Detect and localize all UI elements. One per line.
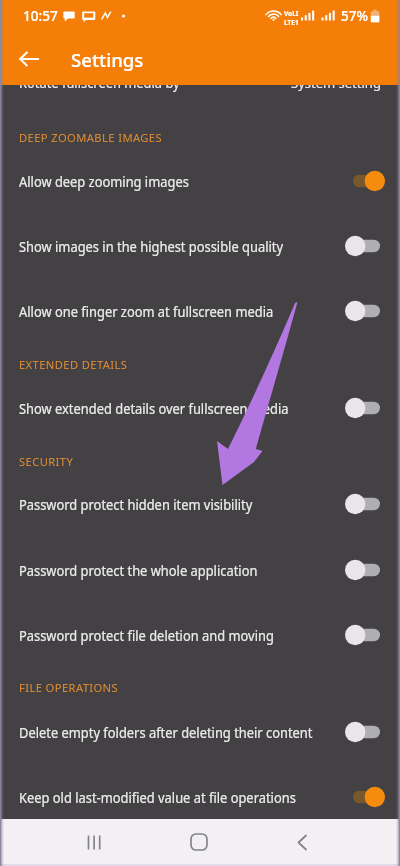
staticText: Rotate fullscreen media by <box>19 73 180 92</box>
staticText: FILE OPERATIONS <box>19 680 119 695</box>
button[interactable]: Password protect the whole application <box>0 538 400 602</box>
staticText: Password protect hidden item visibility <box>19 495 252 514</box>
staticText: Keep old last-modified value at file ope… <box>19 788 296 807</box>
button[interactable]: Delete empty folders after deleting thei… <box>0 700 400 764</box>
staticText: VoLI <box>284 9 299 18</box>
button[interactable]: Password protect file deletion and movin… <box>0 603 400 667</box>
staticText: LTE1 <box>284 18 299 27</box>
staticText: SECURITY <box>19 454 74 469</box>
button[interactable]: Show images in the highest possible qual… <box>0 214 400 278</box>
staticText: Password protect file deletion and movin… <box>19 626 274 645</box>
button[interactable]: Show extended details over fullscreen me… <box>0 376 400 440</box>
staticText: Allow one finger zoom at fullscreen medi… <box>19 302 273 321</box>
button[interactable]: Keep old last-modified value at file ope… <box>0 765 400 829</box>
button[interactable]: Back <box>279 819 327 866</box>
button[interactable]: Allow deep zooming images <box>0 149 400 213</box>
staticText: Show extended details over fullscreen me… <box>19 399 289 418</box>
staticText: System setting <box>291 74 381 92</box>
staticText: Settings <box>71 47 144 72</box>
button[interactable]: Back <box>7 37 51 81</box>
staticText: EXTENDED DETAILS <box>19 357 128 372</box>
staticText: DEEP ZOOMABLE IMAGES <box>19 130 162 145</box>
button[interactable]: Password protect hidden item visibility <box>0 472 400 536</box>
button[interactable]: Recents <box>70 819 118 866</box>
staticText: 10:57 <box>23 6 58 25</box>
staticText: Show images in the highest possible qual… <box>19 237 283 256</box>
staticText: 57% <box>341 6 369 25</box>
button[interactable]: Home <box>175 819 223 866</box>
staticText: Delete empty folders after deleting thei… <box>19 723 313 742</box>
staticText: Password protect the whole application <box>19 561 258 580</box>
button[interactable]: Allow one finger zoom at fullscreen medi… <box>0 279 400 343</box>
staticText: Allow deep zooming images <box>19 172 190 191</box>
